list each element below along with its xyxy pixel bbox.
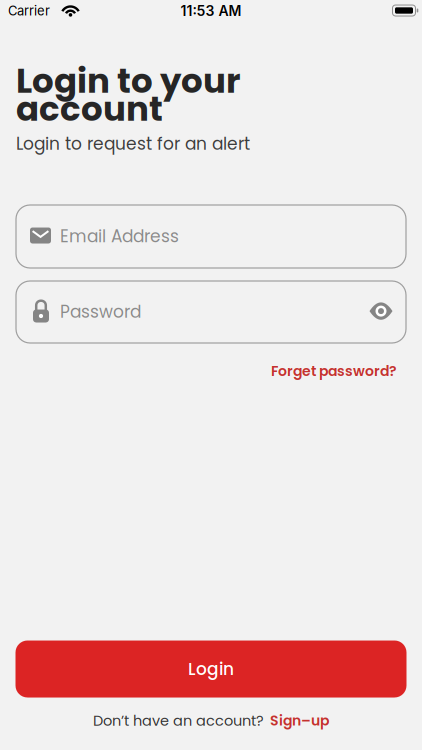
staticText: Login bbox=[188, 657, 234, 681]
staticText: 11:53 AM bbox=[180, 2, 241, 19]
staticText: Login to request for an alert bbox=[16, 132, 250, 156]
staticText: Carrier bbox=[8, 3, 50, 19]
staticText: account bbox=[16, 85, 163, 133]
staticText: Don’t have an account? bbox=[93, 710, 264, 731]
staticText: Sign–up bbox=[270, 711, 329, 730]
staticText: Login to your bbox=[16, 57, 241, 105]
staticText: Forget password? bbox=[271, 361, 397, 381]
staticText: Password bbox=[60, 300, 141, 324]
staticText: Email Address bbox=[60, 224, 179, 248]
